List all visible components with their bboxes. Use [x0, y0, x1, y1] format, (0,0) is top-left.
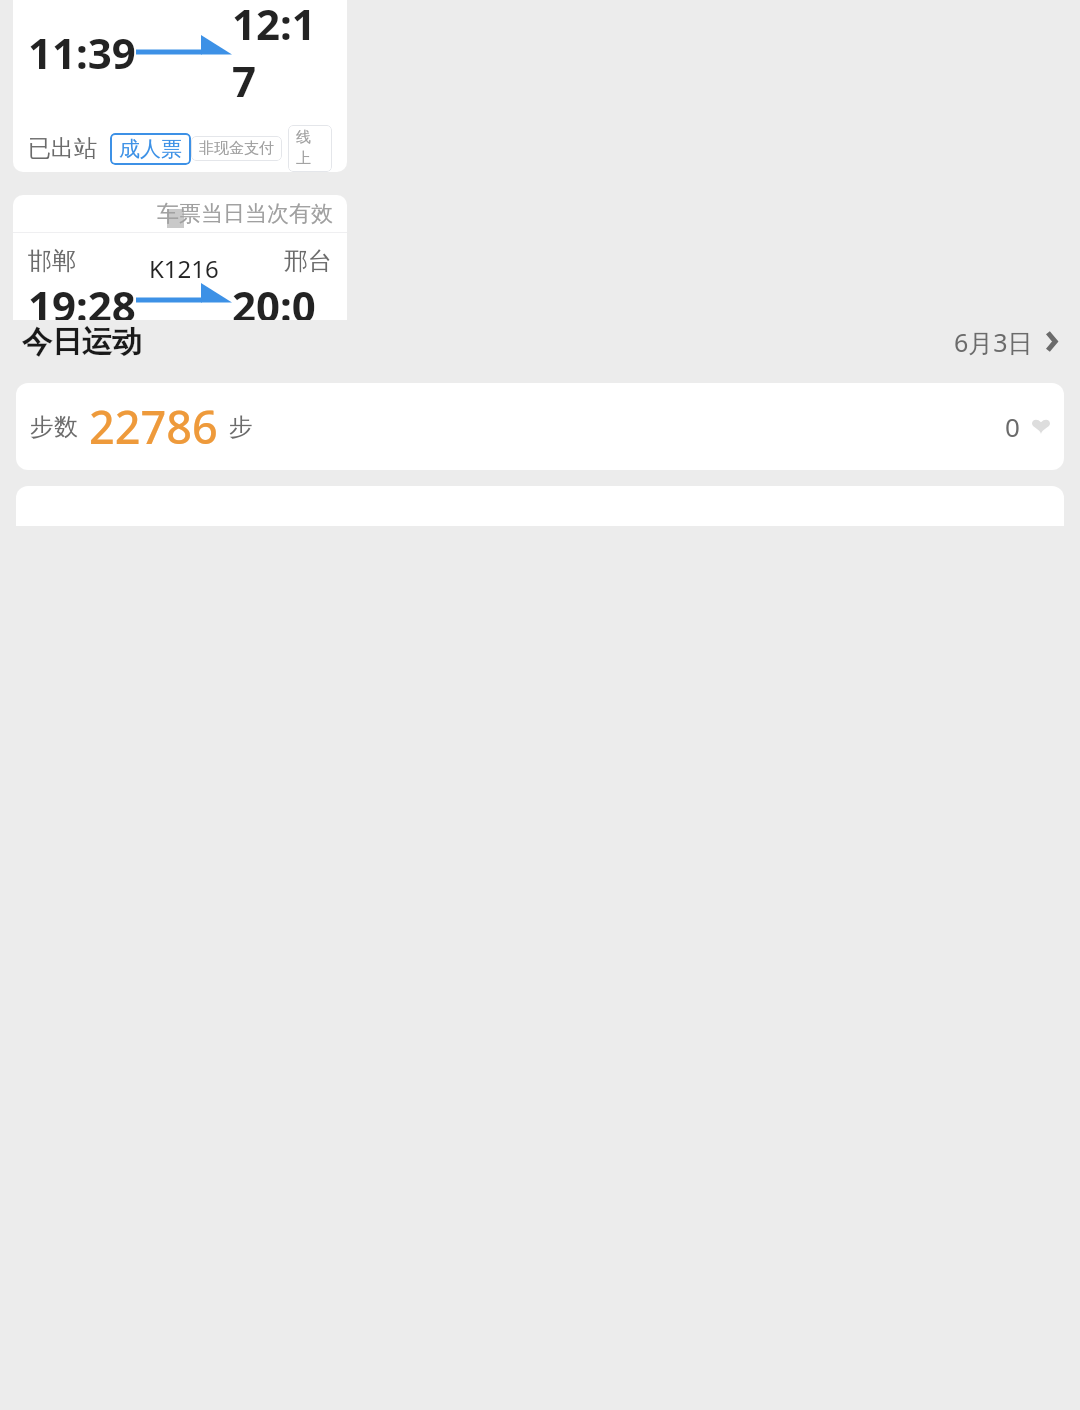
staticText: 19:28: [28, 277, 136, 330]
staticText: 邯郸: [28, 246, 76, 276]
staticText: 11:39: [28, 24, 136, 81]
staticText: 成人票: [119, 136, 182, 162]
staticText: 今日运动: [22, 323, 142, 361]
button[interactable]: 非现金支付: [191, 136, 282, 161]
other: 点赞: [1032, 419, 1050, 434]
staticText: 步: [229, 412, 253, 442]
button[interactable]: 成人票: [110, 133, 191, 165]
button[interactable]: 步数: [16, 383, 1064, 470]
other: 查看更多: [1044, 330, 1058, 353]
staticText: 0: [1005, 409, 1020, 444]
staticText: 12:17: [232, 0, 332, 109]
staticText: 车票当日当次有效: [157, 200, 333, 228]
staticText: 已出站: [28, 134, 97, 163]
staticText: 6月3日: [954, 325, 1033, 359]
staticText: 线上购买: [296, 128, 324, 169]
staticText: 非现金支付: [199, 139, 274, 158]
staticText: 22786: [89, 396, 218, 457]
button[interactable]: 车票当日当次有效: [13, 195, 347, 330]
button[interactable]: 线上购买: [288, 125, 332, 172]
staticText: 20:01: [232, 277, 332, 330]
staticText: K1216: [149, 252, 219, 285]
button[interactable]: 今日运动: [0, 320, 1080, 363]
button[interactable]: 11:39: [13, 0, 347, 172]
staticText: 步数: [30, 412, 78, 442]
staticText: 邢台: [284, 246, 332, 276]
